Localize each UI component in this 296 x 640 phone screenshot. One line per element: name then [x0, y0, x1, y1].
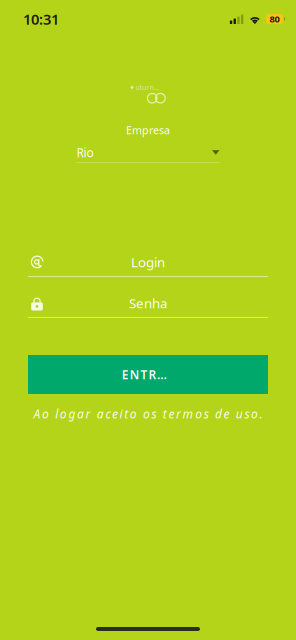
button[interactable]: Senha: [28, 294, 268, 318]
staticText: Empresa: [126, 123, 170, 137]
staticText: 80: [270, 13, 280, 25]
staticText: ENTRAR: [122, 366, 174, 382]
button[interactable]: Login: [28, 253, 268, 277]
button[interactable]: Rio: [76, 146, 219, 163]
staticText: Ao logar aceito os termos de uso.: [33, 406, 263, 422]
staticText: uturnen: [135, 83, 162, 92]
staticText: Login: [131, 253, 165, 271]
staticText: 10:31: [23, 9, 59, 29]
staticText: Senha: [129, 294, 167, 312]
button[interactable]: ENTRAR: [28, 355, 268, 394]
staticText: Rio: [76, 144, 93, 160]
